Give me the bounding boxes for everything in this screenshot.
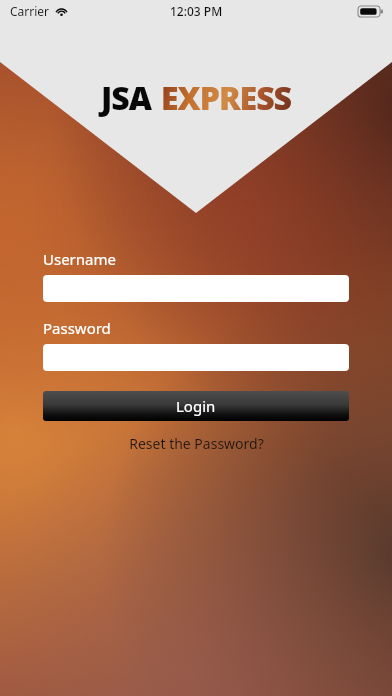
staticText: 12:03 PM bbox=[170, 3, 223, 19]
staticText: Carrier bbox=[10, 3, 50, 19]
button[interactable]: Login bbox=[43, 391, 349, 421]
staticText: EXPRESS bbox=[161, 76, 292, 120]
staticText: Username bbox=[43, 249, 116, 269]
button[interactable]: Reset the Password? bbox=[43, 432, 349, 455]
button[interactable]: Text field bbox=[43, 275, 349, 302]
button[interactable]: Text field bbox=[43, 344, 349, 371]
staticText: Reset the Password? bbox=[129, 434, 264, 453]
staticText: JSA bbox=[101, 76, 151, 120]
staticText: Password bbox=[43, 318, 111, 338]
staticText: Login bbox=[176, 396, 216, 416]
